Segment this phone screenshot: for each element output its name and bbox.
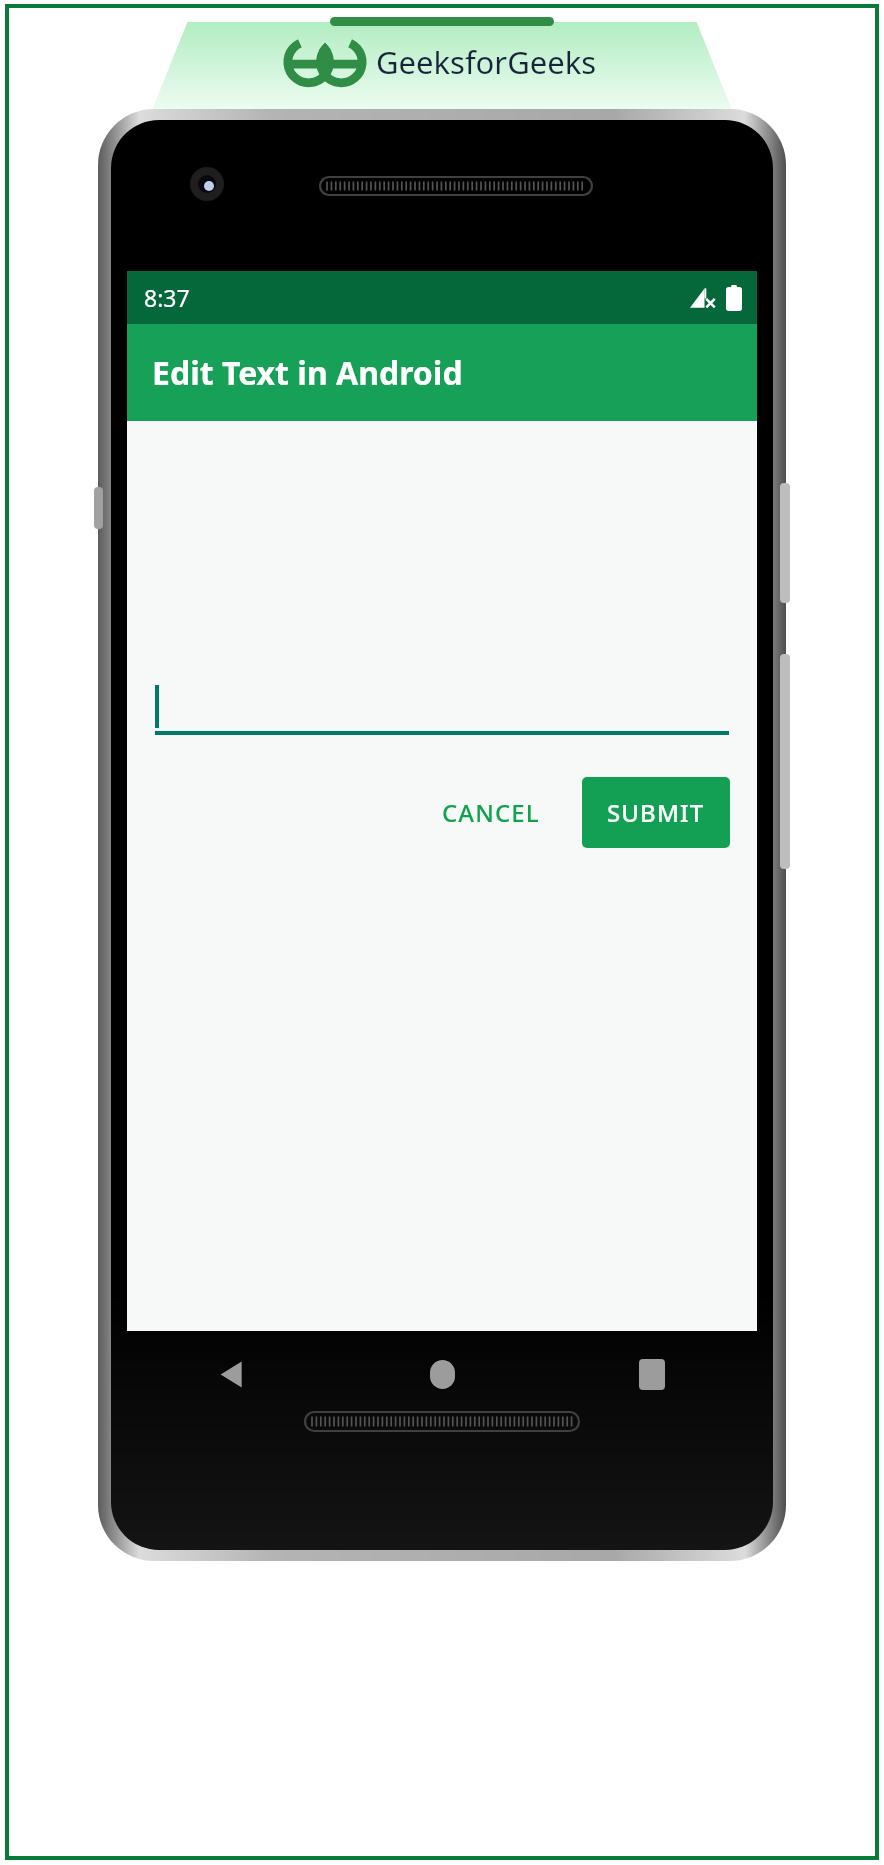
staticText: Edit Text in Android <box>152 351 463 395</box>
staticText: GeeksforGeeks <box>376 41 597 83</box>
button[interactable]: Home <box>337 1331 547 1417</box>
staticText: 8:37 <box>144 282 190 313</box>
staticText: CANCEL <box>442 796 540 829</box>
button[interactable]: Recent apps <box>547 1331 757 1417</box>
button[interactable]: Back <box>127 1331 337 1417</box>
button[interactable]: SUBMIT <box>582 777 730 848</box>
staticText: SUBMIT <box>607 796 705 829</box>
button[interactable]: CANCEL <box>424 780 558 845</box>
button[interactable] <box>155 683 729 735</box>
